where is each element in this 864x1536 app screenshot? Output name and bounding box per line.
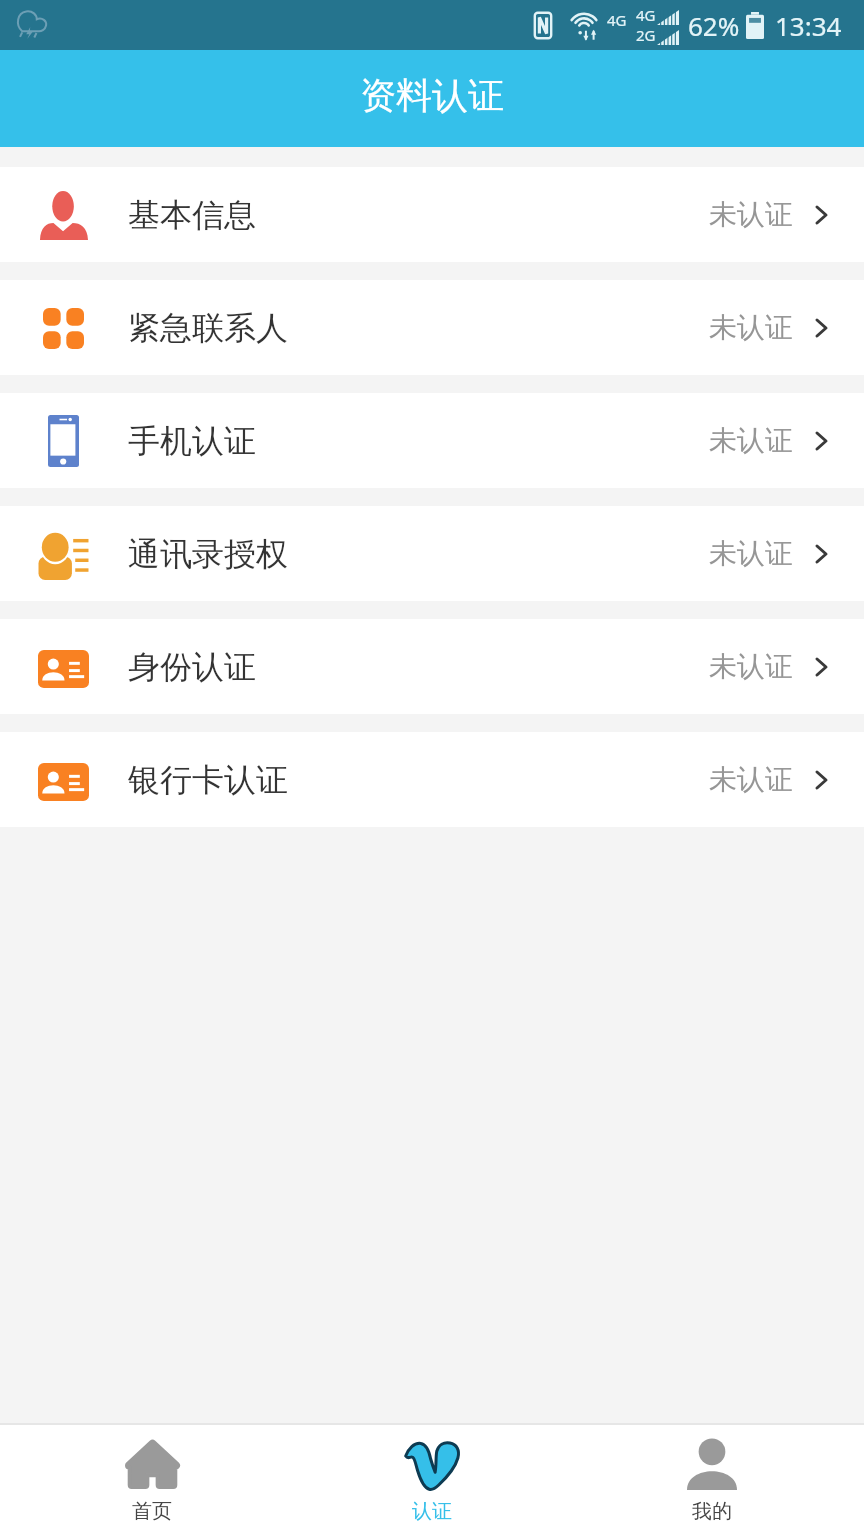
button[interactable]: 银行卡认证 未认证 xyxy=(0,732,864,827)
staticText: 未认证 xyxy=(709,536,793,571)
staticText: 我的 xyxy=(692,1499,732,1524)
staticText: 未认证 xyxy=(709,649,793,684)
staticText: 4G xyxy=(607,10,627,30)
staticText: 紧急联系人 xyxy=(128,308,288,348)
button[interactable]: 认证 xyxy=(292,1425,572,1536)
button[interactable]: 身份认证 未认证 xyxy=(0,619,864,714)
staticText: 未认证 xyxy=(709,762,793,797)
staticText: 13:34 xyxy=(775,8,842,43)
staticText: 62% xyxy=(688,8,740,43)
button[interactable]: 手机认证 未认证 xyxy=(0,393,864,488)
staticText: 未认证 xyxy=(709,423,793,458)
staticText: 身份认证 xyxy=(128,647,256,687)
staticText: 未认证 xyxy=(709,310,793,345)
staticText: 首页 xyxy=(132,1499,172,1524)
staticText: 2G xyxy=(636,25,656,45)
button[interactable]: 紧急联系人 未认证 xyxy=(0,280,864,375)
staticText: 银行卡认证 xyxy=(128,760,288,800)
staticText: 手机认证 xyxy=(128,421,256,461)
staticText: 认证 xyxy=(412,1499,452,1524)
staticText: 基本信息 xyxy=(128,195,256,235)
button[interactable]: 首页 xyxy=(12,1425,292,1536)
staticText: 4G xyxy=(636,5,656,25)
button[interactable]: 基本信息 未认证 xyxy=(0,167,864,262)
button[interactable]: 通讯录授权 未认证 xyxy=(0,506,864,601)
staticText: 资料认证 xyxy=(360,73,504,118)
staticText: 未认证 xyxy=(709,197,793,232)
staticText: 通讯录授权 xyxy=(128,534,288,574)
button[interactable]: 我的 xyxy=(572,1425,852,1536)
